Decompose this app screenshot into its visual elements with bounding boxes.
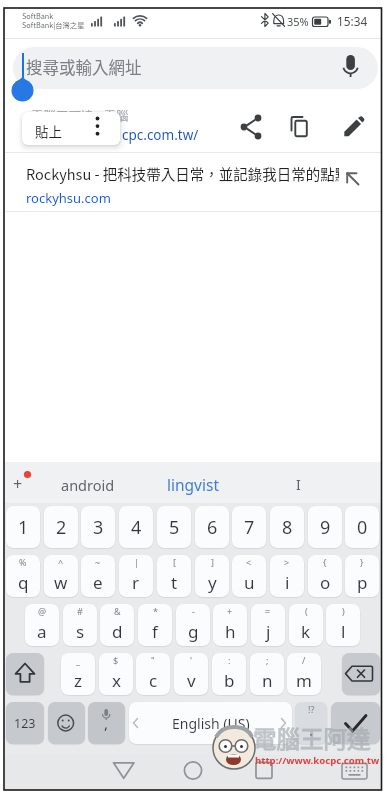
staticText: , (104, 713, 109, 733)
button[interactable] (100, 756, 146, 788)
button[interactable]: : (212, 653, 246, 695)
button[interactable]: % (6, 555, 40, 597)
button[interactable]: = (251, 604, 285, 646)
staticText: $ (113, 654, 119, 666)
staticText: 1 (18, 515, 29, 540)
button[interactable]: , (88, 702, 125, 744)
staticText: / (302, 654, 306, 666)
staticText: + (227, 605, 233, 617)
staticText: [ (173, 556, 176, 568)
staticText: q (18, 571, 29, 594)
staticText: 9 (320, 515, 331, 540)
button[interactable]: ) (326, 604, 360, 646)
staticText: * (153, 605, 158, 617)
button[interactable] (5, 153, 381, 211)
button[interactable]: { (308, 555, 342, 597)
button[interactable] (260, 463, 340, 503)
staticText: I (296, 475, 301, 494)
button[interactable] (170, 756, 216, 788)
button[interactable]: ; (250, 653, 284, 695)
button[interactable]: English (US) (129, 702, 292, 744)
button[interactable]: ] (195, 555, 229, 597)
button[interactable]: < (232, 555, 266, 597)
staticText: : (228, 654, 231, 666)
staticText: > (284, 556, 290, 568)
staticText: # (77, 605, 83, 617)
button[interactable] (336, 112, 368, 144)
button[interactable] (342, 653, 380, 695)
staticText: 123 (14, 715, 36, 732)
button[interactable]: * (138, 604, 172, 646)
staticText: lingvist (167, 474, 220, 495)
staticText: m (296, 669, 312, 692)
staticText: 15:34 (337, 13, 368, 29)
staticText: & (114, 605, 121, 617)
button[interactable]: ' (174, 653, 208, 695)
staticText: k (301, 620, 311, 643)
button[interactable] (150, 463, 240, 503)
staticText: x (112, 669, 121, 692)
staticText: o (320, 571, 331, 594)
staticText: z (74, 669, 82, 692)
staticText: ~ (95, 556, 101, 568)
staticText: } (360, 556, 364, 568)
button[interactable]: | (119, 555, 153, 597)
button[interactable]: 9 (308, 506, 342, 548)
staticText: Rockyhsu - 把科技帶入日常，並記錄我日常的點點滴滴 (26, 163, 339, 186)
button[interactable] (22, 112, 120, 145)
button[interactable]: ^ (44, 555, 78, 597)
button[interactable]: 2 (44, 506, 78, 548)
button[interactable]: @ (25, 604, 59, 646)
button[interactable]: 1 (6, 506, 40, 548)
staticText: j (266, 620, 271, 643)
staticText: 貼上 (35, 121, 62, 141)
button[interactable]: ( (289, 604, 323, 646)
button[interactable]: 8 (270, 506, 304, 548)
button[interactable]: !? (295, 702, 327, 744)
button[interactable] (242, 756, 288, 788)
staticText: 35% (287, 14, 309, 29)
button[interactable] (6, 653, 44, 695)
button[interactable]: ~ (81, 555, 115, 597)
staticText: f (152, 620, 158, 643)
button[interactable]: [ (157, 555, 191, 597)
button[interactable]: - (176, 604, 210, 646)
button[interactable]: $ (99, 653, 133, 695)
button[interactable] (331, 702, 380, 744)
staticText: d (112, 620, 123, 643)
staticText: cpc.com.tw/ (122, 126, 199, 144)
button[interactable] (236, 112, 268, 144)
button[interactable] (13, 47, 378, 89)
button[interactable]: 5 (157, 506, 191, 548)
button[interactable]: / (287, 653, 321, 695)
button[interactable]: } (345, 555, 379, 597)
button[interactable]: > (270, 555, 304, 597)
button[interactable]: 3 (81, 506, 115, 548)
button[interactable]: 123 (6, 702, 44, 744)
staticText: ( (305, 605, 308, 617)
staticText: 電腦王阿達 (253, 721, 371, 755)
button[interactable]: 0 (345, 506, 379, 548)
button[interactable] (338, 756, 378, 788)
staticText: w (54, 571, 68, 594)
button[interactable]: # (63, 604, 97, 646)
button[interactable]: + (213, 604, 247, 646)
staticText: | (134, 556, 139, 568)
button[interactable]: 6 (195, 506, 229, 548)
staticText: y (208, 571, 217, 594)
button[interactable] (284, 112, 316, 144)
button[interactable] (5, 463, 65, 503)
staticText: ] (211, 556, 214, 568)
staticText: a (37, 620, 47, 643)
staticText: g (188, 620, 199, 643)
button[interactable]: " (136, 653, 170, 695)
staticText: 8 (282, 515, 293, 540)
button[interactable]: _ (61, 653, 95, 695)
button[interactable]: & (100, 604, 134, 646)
staticText: ^ (58, 556, 64, 568)
button[interactable] (48, 702, 85, 744)
staticText: c (149, 669, 158, 692)
button[interactable]: 4 (119, 506, 153, 548)
button[interactable]: 7 (232, 506, 266, 548)
button[interactable] (65, 463, 145, 503)
